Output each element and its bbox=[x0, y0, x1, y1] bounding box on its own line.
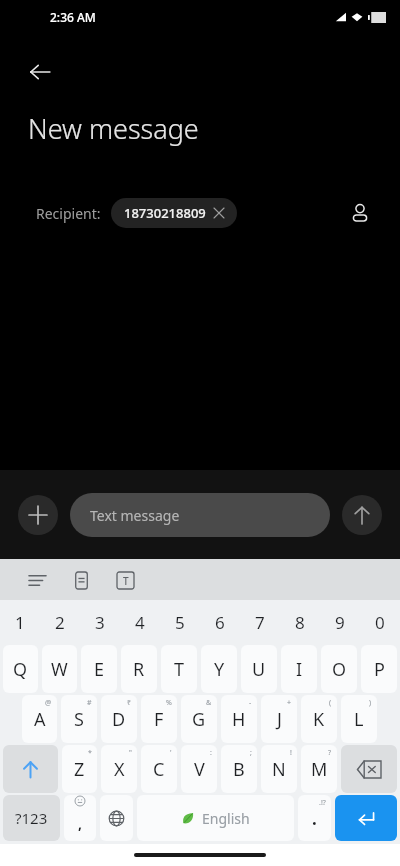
button[interactable]: T bbox=[161, 645, 197, 693]
staticText: V bbox=[194, 757, 205, 782]
button[interactable]: 6 bbox=[200, 600, 240, 644]
button[interactable]: % bbox=[141, 695, 177, 743]
button[interactable]: 2 bbox=[40, 600, 80, 644]
button[interactable]: Text editing bbox=[110, 565, 140, 595]
staticText: ( bbox=[329, 698, 332, 708]
button[interactable]: Shift bbox=[3, 745, 58, 793]
button[interactable]: Enter bbox=[335, 795, 397, 841]
staticText: Recipient: bbox=[36, 204, 101, 223]
button[interactable]: ₹ bbox=[101, 695, 137, 743]
button[interactable]: 4 bbox=[120, 600, 160, 644]
button[interactable]: @ bbox=[22, 695, 57, 743]
button[interactable]: I bbox=[281, 645, 317, 693]
button[interactable]: Text message bbox=[70, 493, 330, 537]
button[interactable]: R bbox=[121, 645, 157, 693]
staticText: + bbox=[287, 698, 292, 708]
button[interactable]: Change language bbox=[100, 795, 133, 841]
staticText: K bbox=[313, 707, 325, 732]
staticText: 1 bbox=[15, 611, 25, 634]
staticText: & bbox=[206, 698, 212, 708]
staticText: R bbox=[133, 657, 145, 682]
staticText: Q bbox=[13, 657, 28, 682]
staticText: # bbox=[87, 698, 92, 708]
staticText: 6 bbox=[215, 611, 225, 634]
staticText: .!? bbox=[319, 798, 326, 808]
button[interactable]: P bbox=[361, 645, 397, 693]
button[interactable]: ? bbox=[301, 745, 337, 793]
staticText: ? bbox=[328, 748, 332, 758]
button[interactable]: English bbox=[137, 795, 294, 841]
staticText: N bbox=[272, 757, 286, 782]
button[interactable]: Clipboard bbox=[66, 565, 96, 595]
button[interactable]: + bbox=[261, 695, 297, 743]
staticText: T bbox=[123, 574, 129, 588]
staticText: % bbox=[166, 698, 172, 708]
staticText: W bbox=[51, 657, 68, 682]
button[interactable]: Backspace bbox=[341, 745, 397, 793]
button[interactable]: 3 bbox=[80, 600, 120, 644]
button[interactable]: : bbox=[181, 745, 217, 793]
button[interactable]: ) bbox=[341, 695, 377, 743]
staticText: . bbox=[312, 807, 317, 830]
button[interactable]: ' bbox=[141, 745, 177, 793]
button[interactable]: 7 bbox=[240, 600, 280, 644]
staticText: 18730218809 bbox=[124, 204, 206, 222]
button[interactable]: 9 bbox=[320, 600, 360, 644]
staticText: ' bbox=[170, 748, 172, 758]
staticText: B bbox=[233, 757, 245, 782]
button[interactable]: Add attachment bbox=[18, 495, 58, 535]
staticText: 8 bbox=[295, 611, 305, 634]
staticText: P bbox=[374, 657, 385, 682]
staticText: ; bbox=[250, 748, 252, 758]
button[interactable]: W bbox=[42, 645, 77, 693]
staticText: 5 bbox=[175, 611, 185, 634]
staticText: 4 bbox=[135, 611, 145, 634]
button[interactable]: ?123 bbox=[3, 795, 60, 841]
staticText: , bbox=[78, 814, 82, 833]
button[interactable]: 8 bbox=[280, 600, 320, 644]
button[interactable]: Q bbox=[3, 645, 38, 693]
button[interactable]: - bbox=[221, 695, 257, 743]
button[interactable]: * bbox=[62, 745, 97, 793]
button[interactable]: Contacts bbox=[340, 193, 380, 233]
staticText: I bbox=[296, 657, 303, 682]
button[interactable]: Emoji bbox=[64, 795, 96, 841]
staticText: T bbox=[174, 657, 185, 682]
button[interactable]: U bbox=[241, 645, 277, 693]
staticText: 2 bbox=[55, 611, 65, 634]
staticText: S bbox=[74, 707, 84, 732]
button[interactable]: Send bbox=[342, 495, 382, 535]
staticText: 0 bbox=[375, 611, 385, 634]
staticText: C bbox=[153, 757, 165, 782]
staticText: ! bbox=[290, 748, 292, 758]
button[interactable]: ; bbox=[221, 745, 257, 793]
staticText: * bbox=[88, 748, 92, 758]
button[interactable]: Back bbox=[18, 50, 62, 94]
staticText: : bbox=[210, 748, 212, 758]
button[interactable]: 5 bbox=[160, 600, 200, 644]
staticText: M bbox=[311, 757, 328, 782]
button[interactable]: # bbox=[61, 695, 97, 743]
button[interactable]: Menu bbox=[22, 565, 52, 595]
button[interactable]: 0 bbox=[360, 600, 400, 644]
staticText: J bbox=[277, 707, 282, 732]
staticText: H bbox=[232, 707, 246, 732]
button[interactable]: ( bbox=[301, 695, 337, 743]
staticText: Text message bbox=[90, 506, 180, 525]
staticText: O bbox=[332, 657, 347, 682]
button[interactable]: Y bbox=[201, 645, 237, 693]
button[interactable]: .!? bbox=[298, 795, 331, 841]
staticText: 3 bbox=[95, 611, 105, 634]
staticText: 9 bbox=[335, 611, 345, 634]
button[interactable]: O bbox=[321, 645, 357, 693]
button[interactable]: E bbox=[81, 645, 117, 693]
button[interactable]: 1 bbox=[0, 600, 40, 644]
button[interactable]: & bbox=[181, 695, 217, 743]
staticText: F bbox=[154, 707, 164, 732]
staticText: ₹ bbox=[127, 698, 132, 708]
staticText: English bbox=[202, 809, 250, 828]
button[interactable]: " bbox=[101, 745, 137, 793]
staticText: Z bbox=[74, 757, 85, 782]
button[interactable]: ! bbox=[261, 745, 297, 793]
button[interactable]: 18730218809 bbox=[111, 198, 237, 228]
